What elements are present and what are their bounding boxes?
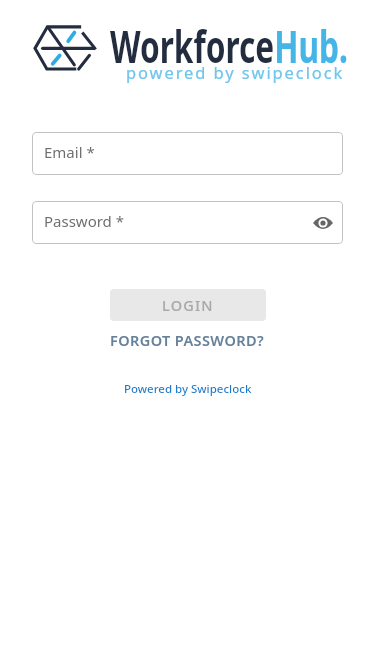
button[interactable]: Powered by Swipeclock (120, 377, 256, 401)
staticText: LOGIN (162, 295, 214, 315)
button[interactable]: FORGOT PASSWORD? (102, 328, 273, 352)
button[interactable]: LOGIN (110, 289, 266, 321)
button[interactable]: Password * (32, 201, 343, 244)
staticText: Email * (44, 142, 95, 162)
staticText: Password * (44, 211, 125, 231)
staticText: powered by swipeclock (126, 61, 345, 83)
button[interactable] (311, 211, 335, 235)
staticText: FORGOT PASSWORD? (110, 330, 265, 350)
staticText: WorkforceHub. (110, 16, 348, 76)
staticText: Powered by Swipeclock (124, 381, 252, 397)
button[interactable]: Email * (32, 132, 343, 175)
